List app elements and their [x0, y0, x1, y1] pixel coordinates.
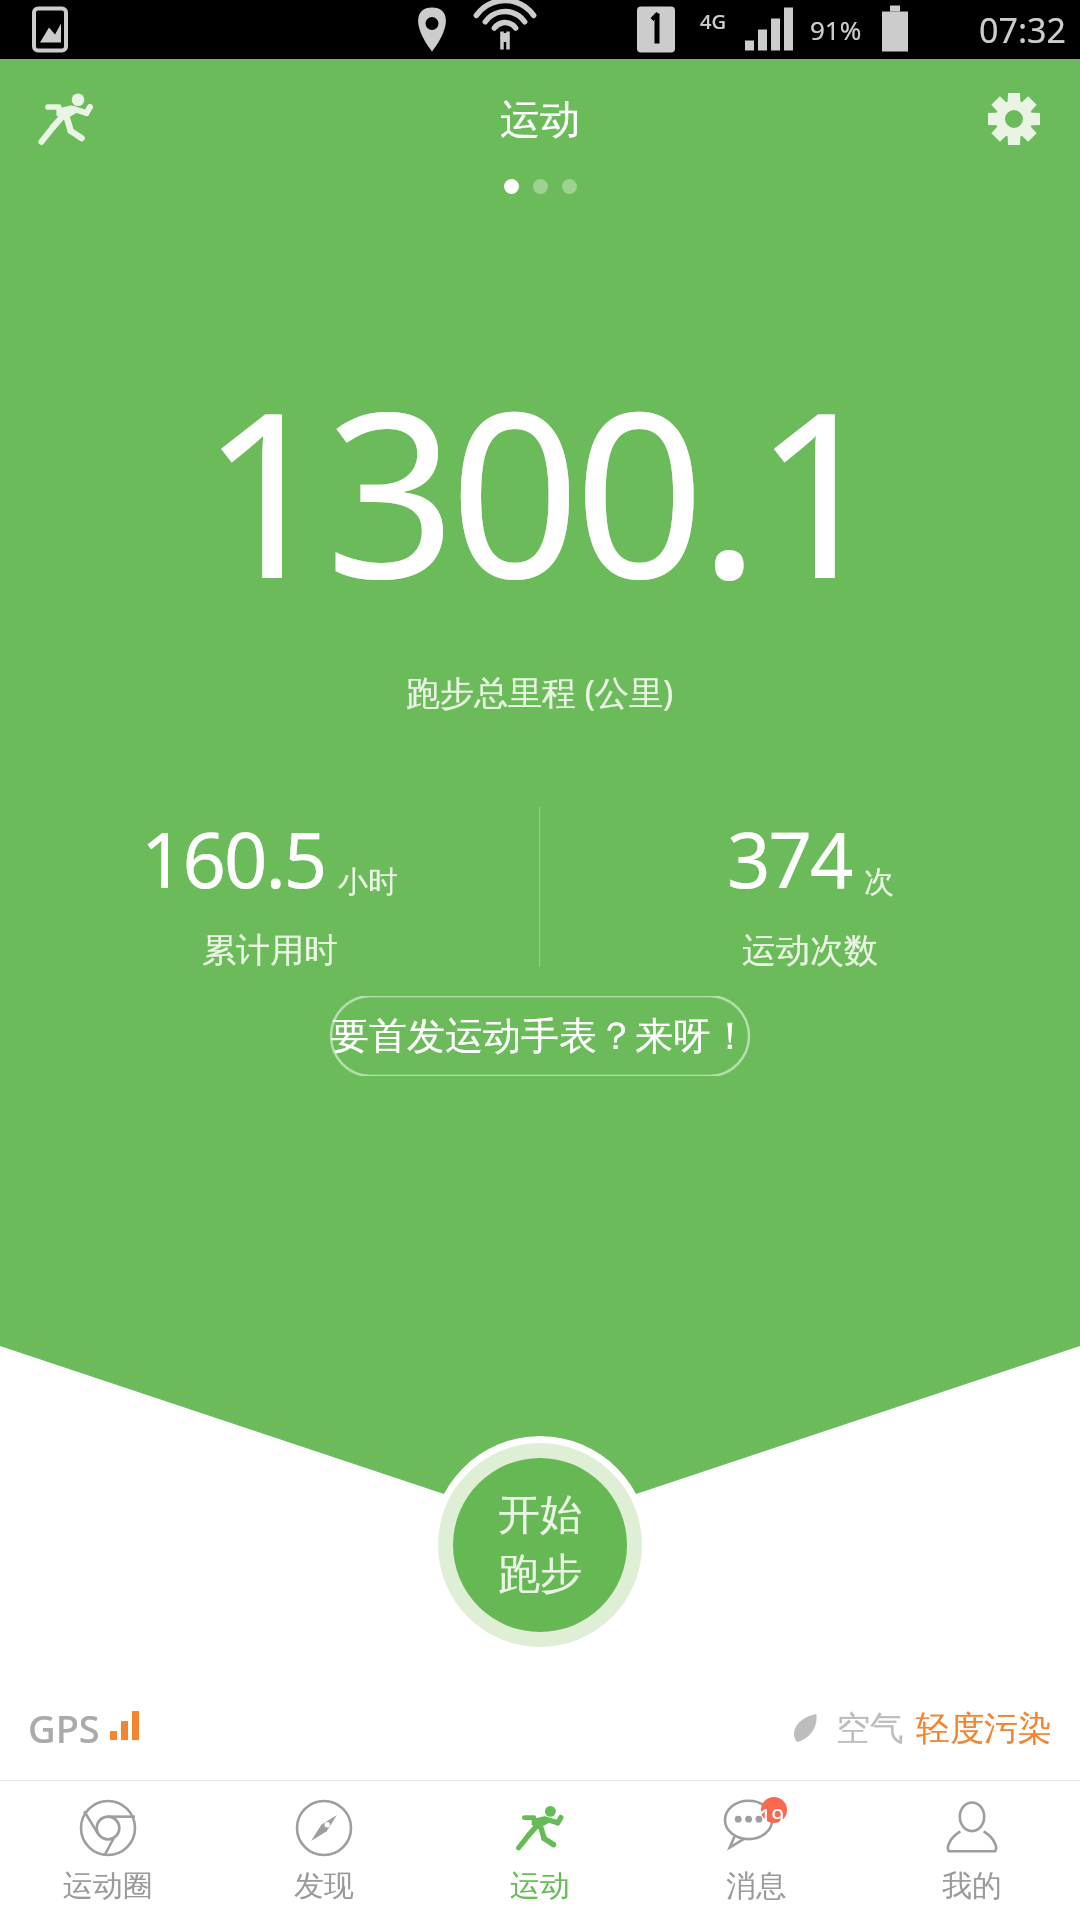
button[interactable]: 160.5	[0, 807, 539, 972]
button[interactable]: Settings	[966, 71, 1062, 167]
staticText: 1300.1	[201, 334, 879, 645]
button[interactable]: 运动圈	[0, 1781, 216, 1920]
button[interactable]: 发现	[216, 1781, 432, 1920]
button[interactable]: Running record	[18, 71, 114, 167]
button[interactable]: 要首发运动手表？来呀！	[291, 996, 789, 1076]
staticText: 要首发运动手表？来呀！	[331, 1012, 749, 1060]
staticText: 运动次数	[742, 929, 878, 972]
staticText: 小时	[338, 863, 398, 901]
staticText: 运动	[500, 94, 580, 144]
button[interactable]: GPS	[28, 1702, 144, 1754]
staticText: 跑步总里程 (公里)	[406, 669, 674, 715]
staticText: 跑步	[498, 1548, 582, 1601]
button[interactable]: 374	[540, 807, 1080, 972]
button[interactable]: 开始	[431, 1436, 649, 1654]
staticText: 19	[759, 1801, 785, 1831]
staticText: 开始	[498, 1489, 582, 1542]
staticText: 累计用时	[202, 929, 338, 972]
staticText: 07:32	[979, 7, 1066, 53]
button[interactable]: 19	[648, 1781, 864, 1920]
staticText: 运动	[510, 1867, 570, 1905]
staticText: 160.5	[141, 807, 326, 911]
staticText: 消息	[726, 1867, 786, 1905]
staticText: 空气	[836, 1707, 904, 1750]
staticText: 轻度污染	[916, 1707, 1052, 1750]
staticText: 发现	[294, 1867, 354, 1905]
staticText: 次	[864, 863, 894, 901]
button[interactable]: 空气	[782, 1706, 1052, 1750]
staticText: 91%	[810, 12, 862, 47]
staticText: GPS	[28, 1702, 100, 1754]
staticText: 374	[727, 807, 852, 911]
staticText: 运动圈	[63, 1867, 153, 1905]
button[interactable]: 运动	[432, 1781, 648, 1920]
staticText: 4G	[700, 8, 726, 35]
staticText: 我的	[942, 1867, 1002, 1905]
button[interactable]: 我的	[864, 1781, 1080, 1920]
